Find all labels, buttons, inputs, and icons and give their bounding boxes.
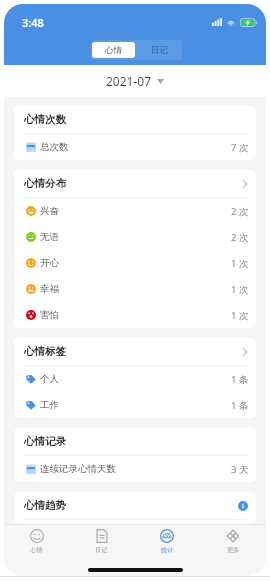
- button[interactable]: 心情: [92, 42, 135, 58]
- button[interactable]: 更多: [200, 525, 266, 576]
- staticText: 日记: [95, 546, 108, 554]
- button[interactable]: 2021-07: [100, 69, 170, 93]
- button[interactable]: 幸福: [14, 276, 256, 302]
- staticText: 心情: [105, 45, 122, 56]
- staticText: 连续记录心情天数: [40, 463, 116, 475]
- staticText: 2 次: [231, 231, 249, 244]
- staticText: 开心: [40, 257, 59, 269]
- button[interactable]: 统计: [134, 525, 200, 576]
- staticText: 3:48: [22, 15, 44, 30]
- button[interactable]: 总次数: [14, 134, 256, 160]
- other: Battery charging: [240, 18, 257, 27]
- staticText: 7 次: [231, 141, 249, 154]
- other: Wi-Fi: [227, 19, 235, 26]
- staticText: 心情记录: [24, 435, 66, 448]
- other: Signal strength: [212, 18, 222, 26]
- button[interactable]: 连续记录心情天数: [14, 456, 256, 482]
- staticText: 1 条: [231, 399, 249, 412]
- staticText: 工作: [40, 399, 59, 411]
- staticText: 总次数: [40, 141, 69, 153]
- staticText: 害怕: [40, 309, 59, 321]
- button[interactable]: 心情标签: [14, 338, 256, 365]
- button[interactable]: 无语: [14, 224, 256, 250]
- button[interactable]: 心情: [4, 525, 69, 576]
- other: More: [242, 179, 248, 189]
- staticText: 2021-07: [106, 73, 152, 89]
- staticText: 1 次: [231, 283, 249, 296]
- staticText: 兴奋: [40, 205, 59, 217]
- staticText: 1 次: [231, 257, 249, 270]
- button[interactable]: 心情趋势: [14, 492, 256, 519]
- button[interactable]: 心情分布: [14, 170, 256, 197]
- button[interactable]: 工作: [14, 392, 256, 418]
- staticText: 3 天: [231, 463, 249, 476]
- staticText: 无语: [40, 231, 59, 243]
- staticText: 更多: [227, 546, 240, 554]
- staticText: 心情分布: [24, 177, 66, 190]
- staticText: 1 次: [231, 309, 249, 322]
- staticText: 心情次数: [24, 113, 66, 126]
- staticText: 日记: [151, 45, 168, 56]
- staticText: 心情趋势: [24, 499, 66, 512]
- other: Info: [238, 501, 248, 511]
- button[interactable]: 害怕: [14, 302, 256, 328]
- staticText: 统计: [161, 546, 174, 554]
- button[interactable]: 开心: [14, 250, 256, 276]
- button[interactable]: 兴奋: [14, 198, 256, 224]
- staticText: 2 次: [231, 205, 249, 218]
- staticText: 幸福: [40, 283, 59, 295]
- button[interactable]: 日记: [69, 525, 134, 576]
- staticText: 个人: [40, 373, 59, 385]
- staticText: 1 条: [231, 373, 249, 386]
- staticText: 心情: [30, 546, 43, 554]
- other: More: [242, 347, 248, 357]
- button[interactable]: 日记: [136, 40, 182, 60]
- button[interactable]: 个人: [14, 366, 256, 392]
- staticText: 心情标签: [24, 345, 66, 358]
